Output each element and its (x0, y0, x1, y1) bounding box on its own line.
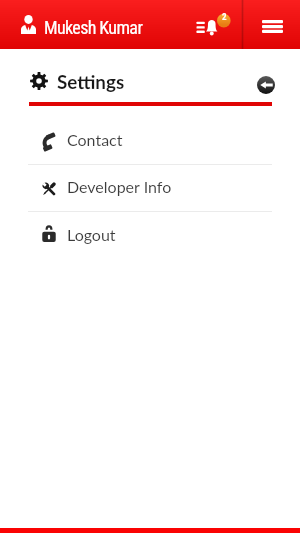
button[interactable]: Developer Info (0, 166, 300, 212)
staticText: Developer Info (67, 177, 172, 196)
staticText: Mukesh Kumar (44, 17, 143, 38)
staticText: 2 (222, 12, 227, 23)
button[interactable]: Contact (0, 119, 300, 165)
staticText: Logout (67, 225, 116, 244)
button[interactable]: Back (257, 76, 275, 94)
button[interactable]: Menu (244, 0, 300, 49)
other: Settings icon (30, 72, 48, 90)
button[interactable]: Notifications, 2 new (196, 0, 241, 49)
staticText: Settings (57, 70, 125, 93)
button[interactable]: Logout (0, 214, 300, 260)
staticText: Contact (67, 130, 123, 149)
